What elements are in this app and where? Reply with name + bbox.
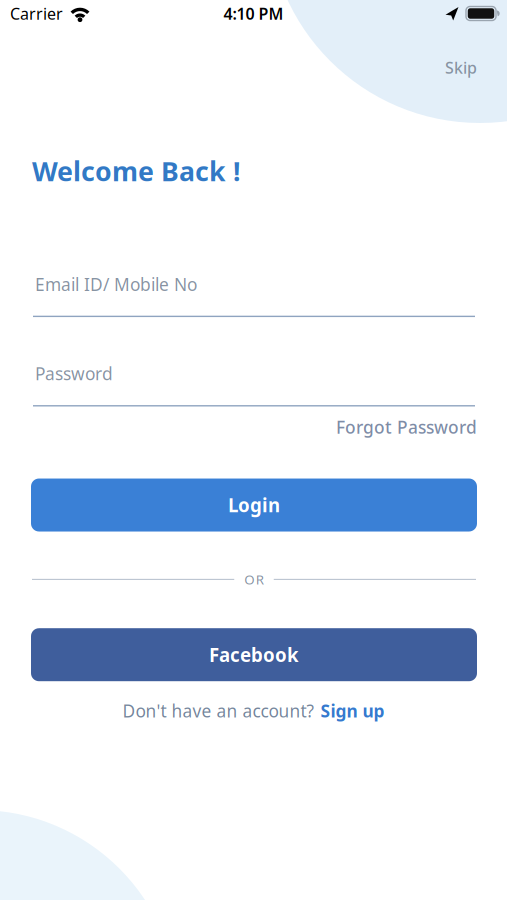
staticText: Carrier: [10, 3, 63, 24]
button[interactable]: Sign up: [320, 699, 384, 722]
staticText: OR: [244, 570, 264, 588]
button[interactable]: Login: [31, 478, 477, 531]
staticText: Password: [35, 362, 113, 385]
staticText: Sign up: [320, 699, 384, 722]
staticText: Welcome Back !: [32, 153, 241, 189]
button[interactable]: Email ID/ Mobile No: [33, 273, 475, 317]
staticText: Forgot Password: [336, 415, 477, 438]
staticText: 4:10 PM: [223, 3, 283, 24]
button[interactable]: Password: [33, 362, 475, 406]
staticText: Skip: [445, 57, 477, 78]
button[interactable]: Forgot Password: [336, 415, 477, 438]
staticText: Email ID/ Mobile No: [35, 273, 197, 296]
staticText: Login: [228, 493, 280, 517]
button[interactable]: Facebook: [31, 628, 477, 681]
staticText: Don't have an account?: [122, 699, 314, 722]
button[interactable]: Skip: [445, 57, 477, 78]
staticText: Facebook: [209, 642, 299, 667]
